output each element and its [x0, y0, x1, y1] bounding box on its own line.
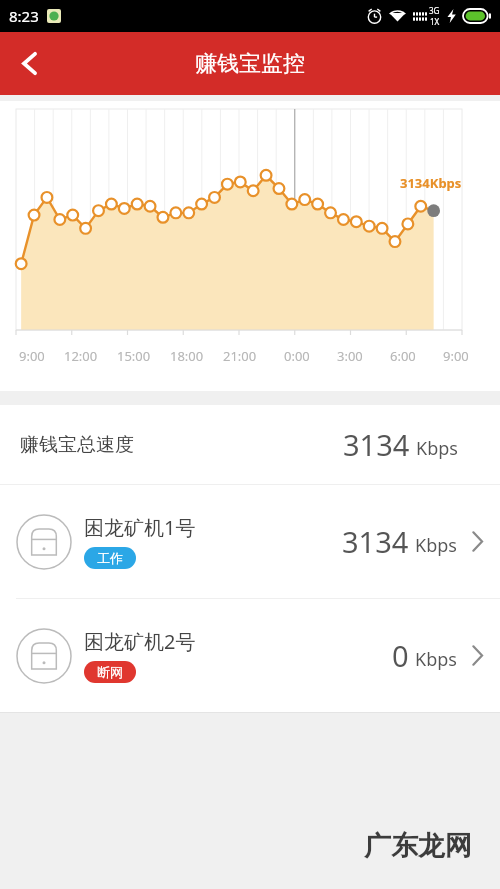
staticText: 3G — [429, 5, 440, 16]
staticText: 3:00 — [337, 347, 363, 365]
staticText: Kbps — [415, 647, 457, 672]
staticText: 12:00 — [64, 347, 98, 365]
staticText: 广东龙网 — [364, 829, 472, 863]
staticText: 1X — [430, 16, 440, 27]
staticText: 0:00 — [284, 347, 310, 365]
button[interactable]: 赚钱宝总速度 — [0, 405, 500, 484]
staticText: 断网 — [97, 664, 123, 680]
staticText: 赚钱宝监控 — [195, 50, 305, 78]
button[interactable]: Back — [0, 32, 58, 95]
button[interactable]: 困龙矿机2号 — [0, 599, 500, 712]
staticText: 15:00 — [117, 347, 151, 365]
staticText: 3134 — [343, 425, 410, 464]
staticText: 18:00 — [170, 347, 204, 365]
staticText: 困龙矿机2号 — [84, 628, 196, 655]
staticText: 赚钱宝总速度 — [20, 433, 134, 457]
staticText: 6:00 — [390, 347, 416, 365]
staticText: 3134 — [342, 522, 409, 561]
staticText: 3134Kbps — [400, 174, 462, 192]
staticText: Kbps — [415, 533, 457, 558]
staticText: 困龙矿机1号 — [84, 514, 196, 541]
staticText: Kbps — [416, 436, 458, 461]
button[interactable]: 困龙矿机1号 — [0, 485, 500, 598]
staticText: 工作 — [97, 550, 123, 566]
staticText: 9:00 — [19, 347, 45, 365]
staticText: 0 — [392, 636, 409, 675]
staticText: 9:00 — [443, 347, 469, 365]
staticText: 21:00 — [223, 347, 257, 365]
staticText: 8:23 — [9, 6, 39, 26]
